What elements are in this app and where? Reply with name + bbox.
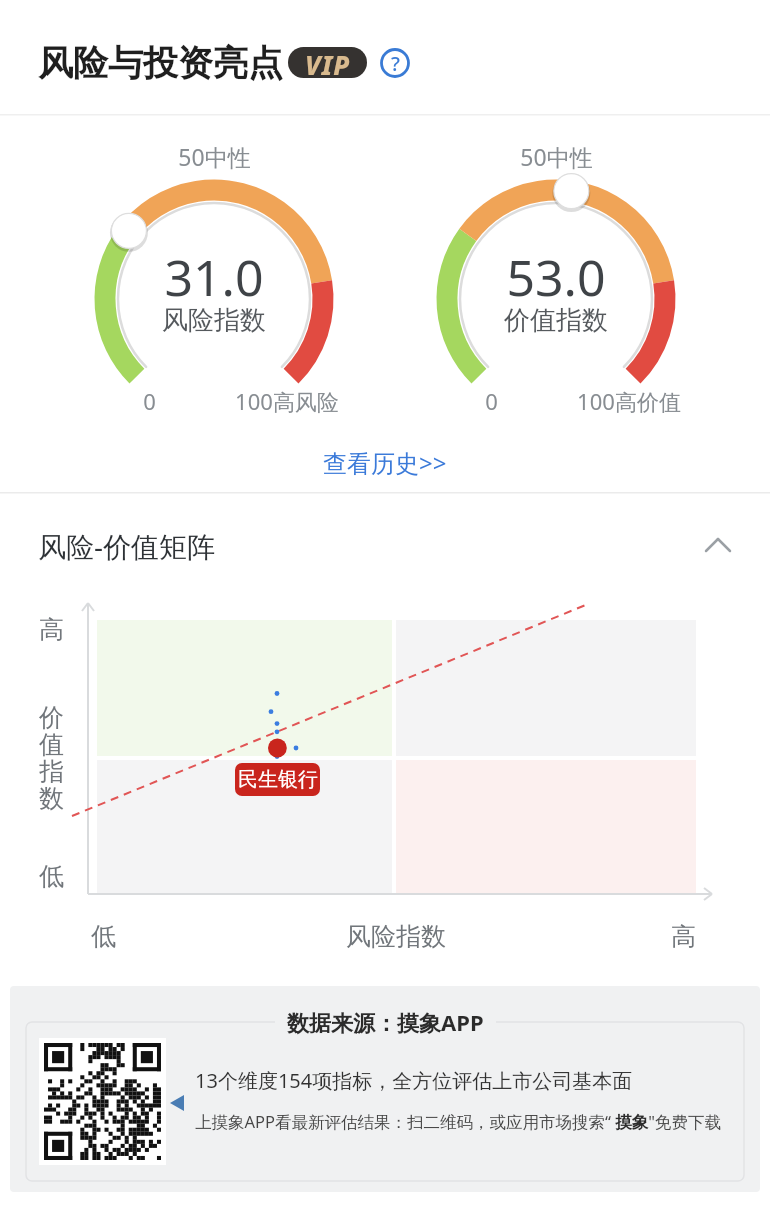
staticText: 100高风险 (235, 386, 339, 416)
staticText: 查看历史>> (323, 446, 447, 479)
staticText: 0 (485, 386, 498, 416)
staticText: 53.0 (506, 243, 606, 303)
staticText: 低 (91, 921, 116, 952)
button[interactable]: ? (380, 48, 410, 78)
staticText: 风险指数 (346, 921, 446, 952)
staticText: 13个维度154项指标，全方位评估上市公司基本面 (195, 1067, 633, 1094)
staticText: 民生银行 (238, 767, 318, 792)
staticText: 价 (39, 702, 64, 733)
staticText: ? (391, 50, 400, 77)
staticText: 100高价值 (577, 386, 681, 416)
staticText: 值 (39, 729, 64, 760)
staticText: 价值指数 (504, 304, 608, 337)
staticText: 50中性 (520, 141, 593, 172)
staticText: 31.0 (164, 243, 264, 303)
staticText: 高 (671, 921, 696, 952)
button[interactable]: VIP (288, 47, 367, 78)
staticText: 数据来源：摸象APP (287, 1007, 484, 1037)
staticText: 低 (39, 861, 64, 892)
staticText: 0 (143, 386, 156, 416)
button[interactable] (700, 530, 744, 564)
staticText: 指 (39, 756, 64, 787)
staticText: 50中性 (178, 141, 251, 172)
staticText: 风险与投资亮点 (38, 41, 283, 85)
staticText: 风险指数 (162, 304, 266, 337)
staticText: 高 (39, 614, 64, 645)
staticText: 数 (39, 783, 64, 814)
staticText: VIP (305, 47, 351, 78)
staticText: 上摸象APP看最新评估结果：扫二维码，或应用市场搜索“ 摸象"免费下载 (195, 1110, 721, 1133)
staticText: 风险-价值矩阵 (38, 527, 216, 565)
button[interactable]: 查看历史>> (310, 445, 460, 479)
